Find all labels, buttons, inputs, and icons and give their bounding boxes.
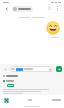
button[interactable]: Send bbox=[56, 66, 62, 72]
button[interactable] bbox=[3, 75, 61, 77]
button[interactable] bbox=[46, 21, 60, 35]
button[interactable]: Back bbox=[3, 5, 10, 12]
button[interactable] bbox=[9, 66, 54, 72]
button[interactable] bbox=[7, 84, 14, 87]
button[interactable] bbox=[52, 97, 61, 102]
button[interactable] bbox=[28, 97, 32, 102]
button[interactable]: Keyboard app bbox=[3, 97, 9, 103]
button[interactable]: Call bbox=[46, 5, 53, 12]
button[interactable]: More options bbox=[54, 5, 61, 12]
button[interactable]: Add attachment bbox=[2, 66, 8, 72]
button[interactable] bbox=[12, 6, 33, 12]
